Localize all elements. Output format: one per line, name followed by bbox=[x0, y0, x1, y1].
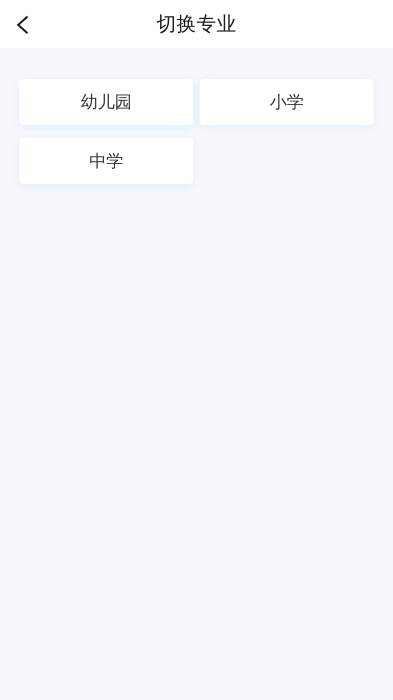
staticText: 幼儿园 bbox=[81, 91, 132, 113]
staticText: 切换专业 bbox=[156, 12, 236, 36]
button[interactable]: 幼儿园 bbox=[19, 79, 193, 125]
button[interactable]: Back bbox=[0, 2, 44, 46]
button[interactable]: 中学 bbox=[19, 138, 193, 184]
staticText: 中学 bbox=[89, 150, 123, 172]
staticText: 小学 bbox=[270, 91, 304, 113]
button[interactable]: 小学 bbox=[200, 79, 374, 125]
